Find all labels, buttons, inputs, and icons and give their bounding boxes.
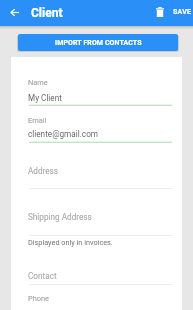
staticText: My Client (28, 93, 62, 103)
staticText: Displayed only in invoices. (28, 238, 113, 247)
staticText: Shipping Address (28, 212, 92, 222)
staticText: SAVE (173, 8, 192, 16)
staticText: Email (28, 116, 47, 125)
button[interactable]: IMPORT FROM CONTACTS (18, 34, 178, 51)
staticText: Name (28, 78, 48, 87)
button[interactable]: Delete (150, 0, 170, 26)
staticText: cliente@gmail.com (28, 129, 99, 139)
button[interactable]: Back (4, 0, 25, 25)
staticText: IMPORT FROM CONTACTS (55, 39, 142, 47)
staticText: Client (31, 6, 63, 20)
staticText: Address (28, 166, 59, 176)
staticText: Phone (28, 294, 49, 303)
button[interactable]: SAVE (171, 0, 193, 25)
staticText: Contact (28, 271, 57, 281)
